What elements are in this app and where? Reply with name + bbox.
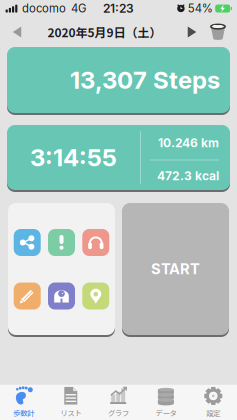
staticText: 54%	[188, 2, 213, 15]
staticText: 設定	[206, 407, 220, 418]
staticText: 472.3 kcal	[157, 169, 219, 183]
button[interactable]: Location	[82, 282, 109, 309]
button[interactable]: Share	[14, 229, 41, 256]
staticText: リスト	[61, 407, 82, 418]
button[interactable]: Music	[82, 229, 109, 256]
button[interactable]: Delete	[205, 20, 231, 44]
button[interactable]: Alert	[48, 229, 75, 256]
staticText: グラフ	[108, 407, 129, 418]
button[interactable]: Previous day	[4, 20, 30, 44]
staticText: 13,307 Steps	[70, 65, 220, 94]
button[interactable]: 設定	[190, 383, 237, 420]
button[interactable]: Next day	[179, 20, 205, 44]
staticText: 4G	[71, 2, 86, 15]
staticText: 2020年5月9日（土）	[47, 23, 161, 41]
button[interactable]: データ	[142, 383, 190, 420]
button[interactable]: リスト	[47, 383, 95, 420]
staticText: docomo	[22, 2, 66, 15]
button[interactable]: Weight	[48, 282, 75, 309]
button[interactable]: START	[122, 203, 229, 335]
staticText: 10.246 km	[158, 136, 219, 150]
staticText: 21:23	[103, 1, 134, 16]
button[interactable]: 3:14:55	[7, 125, 230, 190]
button[interactable]: 歩数計	[0, 383, 47, 420]
button[interactable]: Memo	[14, 282, 41, 309]
staticText: START	[151, 260, 200, 278]
staticText: 歩数計	[13, 407, 34, 418]
staticText: 3:14:55	[30, 143, 117, 172]
staticText: データ	[155, 407, 176, 418]
button[interactable]: 13,307 Steps	[7, 47, 230, 113]
button[interactable]: グラフ	[95, 383, 142, 420]
